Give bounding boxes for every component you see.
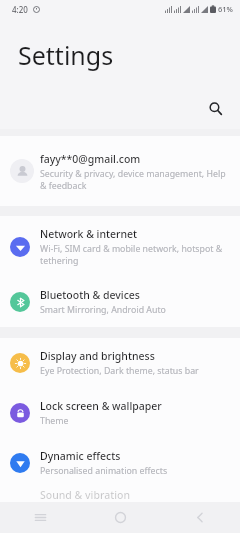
- button[interactable]: Dynamic effects: [0, 438, 240, 488]
- staticText: 4:20: [12, 4, 28, 15]
- button[interactable]: Sound & vibration: [0, 488, 240, 502]
- staticText: Personalised animation effects: [40, 465, 168, 477]
- button[interactable]: fayy**0@gmail.com: [0, 136, 240, 206]
- staticText: Theme: [40, 415, 69, 427]
- staticText: 61%: [218, 4, 233, 14]
- staticText: Security & privacy, device management, H…: [40, 168, 226, 191]
- button[interactable]: Recents: [0, 502, 80, 533]
- button[interactable]: Home: [80, 502, 160, 533]
- button[interactable]: Display and brightness: [0, 338, 240, 388]
- button[interactable]: Bluetooth & devices: [0, 277, 240, 327]
- button[interactable]: Lock screen & wallpaper: [0, 388, 240, 438]
- staticText: Sound & vibration: [40, 488, 131, 502]
- staticText: Network & internet: [40, 227, 138, 241]
- staticText: Lock screen & wallpaper: [40, 399, 162, 413]
- button[interactable]: Search: [200, 93, 230, 123]
- staticText: Smart Mirroring, Android Auto: [40, 304, 166, 316]
- staticText: fayy**0@gmail.com: [40, 152, 141, 166]
- staticText: Settings: [18, 38, 114, 72]
- staticText: Display and brightness: [40, 349, 155, 363]
- staticText: Wi-Fi, SIM card & mobile network, hotspo…: [40, 243, 223, 266]
- button[interactable]: Network & internet: [0, 216, 240, 277]
- staticText: Dynamic effects: [40, 449, 121, 463]
- staticText: Eye Protection, Dark theme, status bar: [40, 365, 199, 377]
- staticText: Bluetooth & devices: [40, 288, 140, 302]
